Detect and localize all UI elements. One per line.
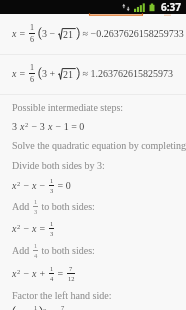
- staticText: 1: [34, 304, 38, 310]
- staticText: 4: [34, 252, 38, 259]
- staticText: 3: [50, 187, 54, 194]
- staticText: Factor the left hand side:: [12, 290, 112, 301]
- staticText: = 0: [55, 180, 71, 191]
- staticText: 2: [25, 121, 29, 128]
- staticText: x: [12, 268, 17, 279]
- staticText: 1: [50, 177, 54, 184]
- staticText: 7: [61, 304, 65, 310]
- staticText: 2: [17, 268, 21, 275]
- staticText: 3 +: [42, 68, 58, 79]
- staticText: 3: [50, 230, 54, 237]
- staticText: 21: [63, 69, 73, 80]
- staticText: =: [37, 223, 48, 234]
- staticText: ≈ 1.263762615825973: [80, 68, 173, 79]
- staticText: Divide both sides by 3:: [12, 160, 105, 171]
- staticText: Possible intermediate steps:: [12, 102, 124, 113]
- staticText: 4: [50, 275, 54, 282]
- staticText: 6: [30, 35, 34, 44]
- staticText: −: [37, 180, 48, 191]
- staticText: 2: [17, 223, 21, 230]
- staticText: −: [21, 180, 32, 191]
- staticText: x: [20, 121, 25, 132]
- staticText: 3 −: [42, 28, 58, 39]
- staticText: 21: [63, 29, 73, 40]
- staticText: =: [17, 68, 28, 79]
- staticText: 1: [34, 198, 38, 205]
- staticText: 1: [34, 242, 38, 249]
- staticText: 1: [30, 23, 34, 32]
- staticText: ≈ −0.2637626158259733: [80, 28, 184, 39]
- staticText: +: [37, 268, 48, 279]
- staticText: x: [12, 28, 17, 39]
- staticText: 1: [30, 63, 34, 72]
- staticText: 3: [34, 208, 38, 215]
- staticText: 12: [68, 275, 75, 282]
- staticText: to both sides:: [39, 245, 95, 256]
- staticText: − 3: [29, 121, 48, 132]
- staticText: =: [55, 268, 66, 279]
- staticText: x: [12, 223, 17, 234]
- staticText: 7: [69, 265, 73, 272]
- button[interactable]: x: [0, 14, 186, 53]
- staticText: x: [12, 180, 17, 191]
- staticText: 6:37: [161, 0, 181, 14]
- staticText: 3: [12, 121, 20, 132]
- staticText: 2: [17, 180, 21, 187]
- staticText: 1: [50, 265, 54, 272]
- staticText: x: [32, 180, 37, 191]
- button[interactable]: x: [0, 54, 186, 93]
- staticText: Solve the quadratic equation by completi…: [12, 140, 186, 151]
- staticText: x: [32, 268, 37, 279]
- staticText: to both sides:: [39, 201, 95, 212]
- staticText: Add: [12, 201, 32, 212]
- staticText: −: [21, 223, 32, 234]
- staticText: x: [12, 68, 17, 79]
- staticText: x: [48, 121, 53, 132]
- staticText: =: [17, 28, 28, 39]
- staticText: 6: [30, 75, 34, 84]
- staticText: − 1 = 0: [53, 121, 85, 132]
- staticText: 2: [43, 307, 47, 310]
- staticText: Add: [12, 245, 32, 256]
- staticText: x: [32, 223, 37, 234]
- staticText: 1: [50, 220, 54, 227]
- staticText: −: [21, 268, 32, 279]
